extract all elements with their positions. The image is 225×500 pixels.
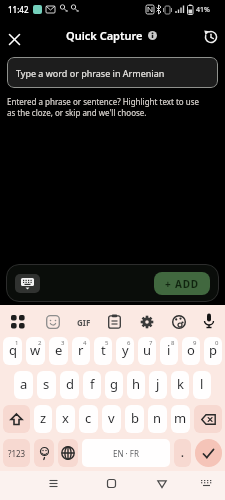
button[interactable]: g [105, 371, 123, 399]
staticText: 6 [127, 339, 131, 347]
staticText: 2 [38, 339, 42, 347]
button[interactable] [46, 315, 60, 329]
button[interactable]: Type a word or phrase in Armenian [7, 57, 218, 88]
staticText: + ADD [165, 277, 199, 291]
button[interactable] [194, 405, 222, 433]
staticText: t [101, 341, 106, 359]
button[interactable]: u [138, 337, 156, 365]
staticText: k [177, 375, 184, 393]
button[interactable]: p [204, 337, 222, 365]
button[interactable] [203, 313, 215, 329]
button[interactable] [195, 439, 222, 467]
staticText: 11:42 [8, 4, 29, 15]
button[interactable] [108, 314, 121, 329]
button[interactable]: r [72, 337, 90, 365]
button[interactable]: w [26, 337, 45, 365]
button[interactable]: m [171, 405, 190, 433]
staticText: h [132, 375, 141, 393]
staticText: 8 [171, 339, 175, 347]
button[interactable] [140, 315, 154, 329]
staticText: s [43, 375, 50, 393]
staticText: y [122, 341, 129, 359]
staticText: d [66, 375, 74, 393]
staticText: q [9, 341, 17, 359]
staticText: 7 [149, 339, 153, 347]
staticText: 9 [193, 339, 197, 347]
staticText: ?123 [8, 448, 26, 459]
staticText: . [181, 446, 184, 460]
staticText: e [55, 341, 63, 359]
button[interactable]: x [56, 405, 75, 433]
button[interactable]: v [102, 405, 121, 433]
button[interactable] [58, 439, 78, 467]
button[interactable]: o [182, 337, 200, 365]
button[interactable]: h [127, 371, 145, 399]
staticText: u [143, 341, 152, 359]
staticText: x [62, 409, 69, 427]
staticText: EN · FR [113, 448, 139, 459]
button[interactable]: EN · FR [82, 439, 170, 467]
button[interactable] [48, 478, 59, 489]
staticText: v [108, 409, 115, 427]
staticText: c [85, 409, 92, 427]
button[interactable] [4, 29, 24, 49]
button[interactable] [156, 478, 168, 490]
staticText: 1 [15, 339, 19, 347]
button[interactable] [11, 315, 26, 330]
staticText: n [153, 409, 162, 427]
staticText: 3 [61, 339, 65, 347]
staticText: o [187, 341, 195, 359]
button[interactable] [200, 479, 213, 489]
button[interactable]: q [3, 337, 22, 365]
staticText: g [110, 375, 118, 393]
button[interactable] [34, 439, 54, 467]
button[interactable]: a [14, 371, 33, 399]
button[interactable]: ?123 [3, 439, 30, 467]
button[interactable]: n [148, 405, 167, 433]
staticText: Type a word or phrase in Armenian [16, 67, 165, 79]
staticText: GIF [77, 317, 91, 328]
staticText: i [167, 341, 171, 359]
staticText: a [20, 375, 28, 393]
button[interactable]: l [193, 371, 211, 399]
staticText: Entered a phrase or sentence? Highlight … [7, 96, 200, 118]
staticText: r [78, 341, 84, 359]
button[interactable]: + ADD [154, 272, 210, 295]
button[interactable]: . [174, 439, 191, 467]
button[interactable] [3, 405, 30, 433]
staticText: z [40, 409, 47, 427]
button[interactable]: z [34, 405, 52, 433]
staticText: m [174, 409, 187, 427]
button[interactable] [201, 27, 221, 47]
staticText: 5 [105, 339, 109, 347]
staticText: 0 [215, 339, 219, 347]
button[interactable]: t [94, 337, 112, 365]
button[interactable] [172, 315, 186, 329]
button[interactable]: i [160, 337, 178, 365]
staticText: 4 [83, 339, 87, 347]
staticText: f [90, 375, 95, 393]
button[interactable]: j [149, 371, 167, 399]
button[interactable]: e [49, 337, 68, 365]
staticText: b [131, 409, 139, 427]
staticText: p [209, 341, 217, 359]
button[interactable]: s [37, 371, 56, 399]
staticText: j [156, 375, 160, 393]
button[interactable]: y [116, 337, 134, 365]
button[interactable]: f [83, 371, 101, 399]
button[interactable]: b [125, 405, 144, 433]
button[interactable]: d [60, 371, 79, 399]
staticText: 41% [196, 5, 210, 15]
staticText: l [200, 375, 204, 393]
button[interactable] [106, 478, 117, 489]
button[interactable] [15, 274, 40, 293]
button[interactable]: k [171, 371, 189, 399]
button[interactable]: c [79, 405, 98, 433]
staticText: Quick Capture [66, 28, 143, 43]
staticText: w [30, 341, 41, 359]
